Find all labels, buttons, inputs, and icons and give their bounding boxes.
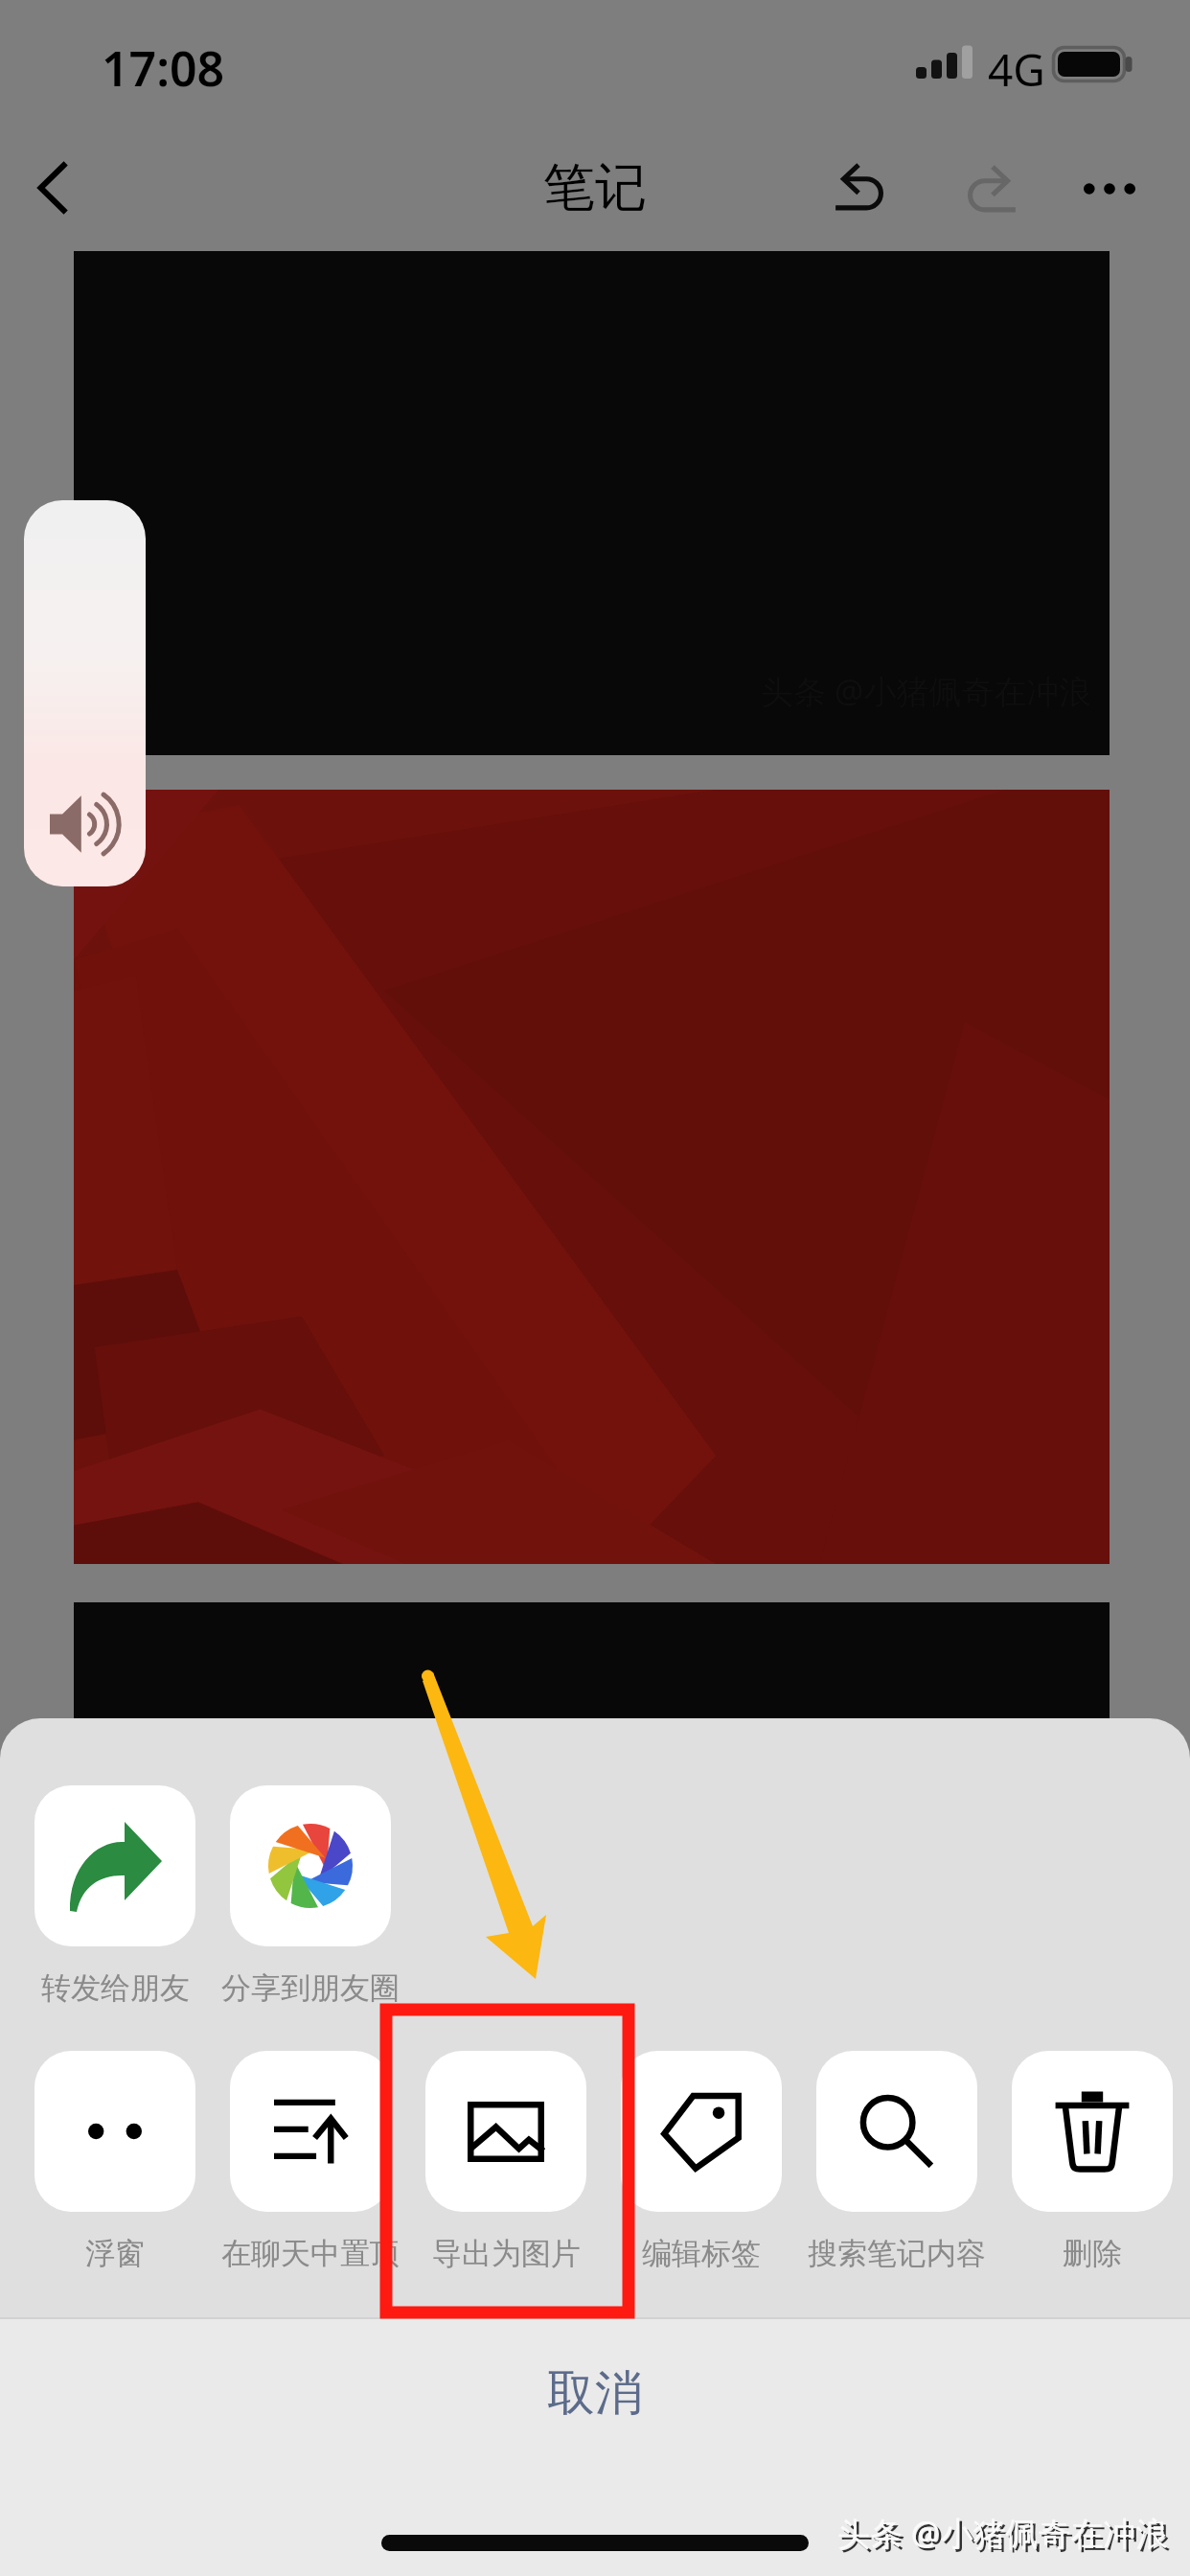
button[interactable]: Undo [806, 134, 909, 238]
button[interactable]: 导出为图片 [391, 2051, 621, 2290]
staticText: 删除 [1063, 2235, 1122, 2272]
button[interactable]: 分享到朋友圈 [195, 1785, 425, 2025]
staticText: 分享到朋友圈 [221, 1969, 400, 2007]
button[interactable]: 在聊天中置顶 [195, 2051, 425, 2290]
button[interactable]: 转发给朋友 [0, 1785, 230, 2025]
button[interactable]: More options [1058, 137, 1161, 241]
button[interactable]: 浮窗 [0, 2051, 230, 2290]
staticText: 头条 @小猪佩奇在冲浪 [837, 2511, 1169, 2555]
staticText: 浮窗 [85, 2235, 145, 2272]
staticText: 转发给朋友 [41, 1969, 190, 2007]
staticText: 头条 @小猪佩奇在冲浪 [840, 2514, 1172, 2558]
staticText: 笔记 [543, 155, 647, 220]
button[interactable]: 编辑标签 [586, 2051, 816, 2290]
staticText: 17:08 [102, 35, 225, 101]
staticText: 搜索笔记内容 [808, 2235, 986, 2272]
staticText: 导出为图片 [432, 2235, 581, 2272]
staticText: 4G [988, 39, 1045, 100]
button[interactable]: Back [10, 136, 113, 240]
staticText: 取消 [547, 2363, 643, 2424]
button[interactable]: 删除 [977, 2051, 1190, 2290]
staticText: 在聊天中置顶 [221, 2235, 400, 2272]
button[interactable]: Redo [942, 136, 1045, 240]
button[interactable]: 搜索笔记内容 [782, 2051, 1012, 2290]
button[interactable]: 取消 [0, 2319, 1190, 2467]
staticText: 编辑标签 [642, 2235, 761, 2272]
